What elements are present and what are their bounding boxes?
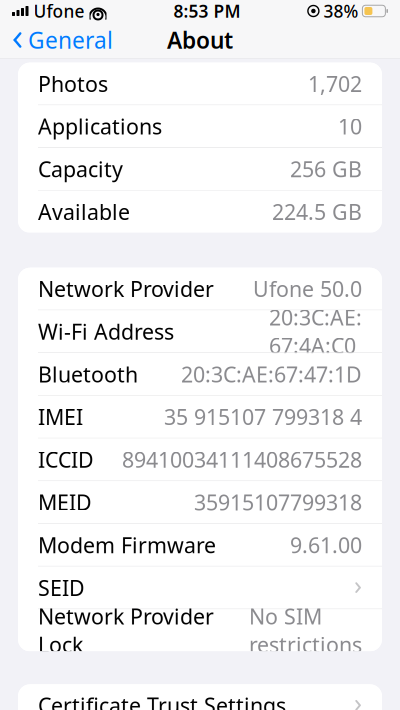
button[interactable]: Network Provider [18,268,382,310]
button[interactable]: General [0,22,121,58]
staticText: Capacity [38,155,123,183]
staticText: No SIM restrictions [249,602,362,659]
staticText: Modem Firmware [38,531,216,559]
button[interactable]: Available [18,191,382,233]
staticText: 89410034111408675528 [122,445,362,474]
button[interactable]: Modem Firmware [18,524,382,566]
staticText: Network Provider [38,274,214,303]
button[interactable]: MEID [18,481,382,523]
staticText: 38% [323,0,358,22]
staticText: Wi-Fi Address [38,317,174,345]
staticText: SEID [38,573,85,602]
staticText: 20:3C:AE:67:4A:C0 [269,303,362,360]
button[interactable]: Bluetooth [18,353,382,395]
staticText: About [167,25,233,55]
button[interactable]: ICCID [18,438,382,480]
staticText: 256 GB [290,155,362,183]
staticText: Ufone 50.0 [253,274,362,303]
staticText: MEID [38,488,92,516]
button[interactable]: Wi-Fi Address [18,310,382,352]
staticText: Applications [38,112,162,140]
staticText: 224.5 GB [272,197,362,226]
staticText: Bluetooth [38,360,138,388]
button[interactable]: Capacity [18,148,382,190]
staticText: Network Provider Lock [38,602,214,659]
staticText: 8:53 PM [173,0,240,22]
staticText: 1,702 [308,69,362,98]
staticText: 9.61.00 [290,531,362,559]
staticText: 35 915107 799318 4 [164,403,362,431]
staticText: General [28,25,113,55]
staticText: ICCID [38,445,94,474]
staticText: 20:3C:AE:67:47:1D [181,360,362,388]
staticText: Available [38,197,130,226]
staticText: 35915107799318 [194,488,362,516]
button[interactable]: SEID [18,567,382,609]
button[interactable]: Applications [18,105,382,147]
staticText: 10 [338,112,362,140]
button[interactable]: IMEI [18,396,382,438]
staticText: Certificate Trust Settings [38,691,286,710]
button[interactable]: Network Provider Lock [18,609,382,651]
staticText: IMEI [38,403,83,431]
staticText: Ufone [33,0,84,22]
button[interactable]: Certificate Trust Settings [18,684,382,710]
button[interactable]: Photos [18,63,382,105]
staticText: Photos [38,69,108,98]
